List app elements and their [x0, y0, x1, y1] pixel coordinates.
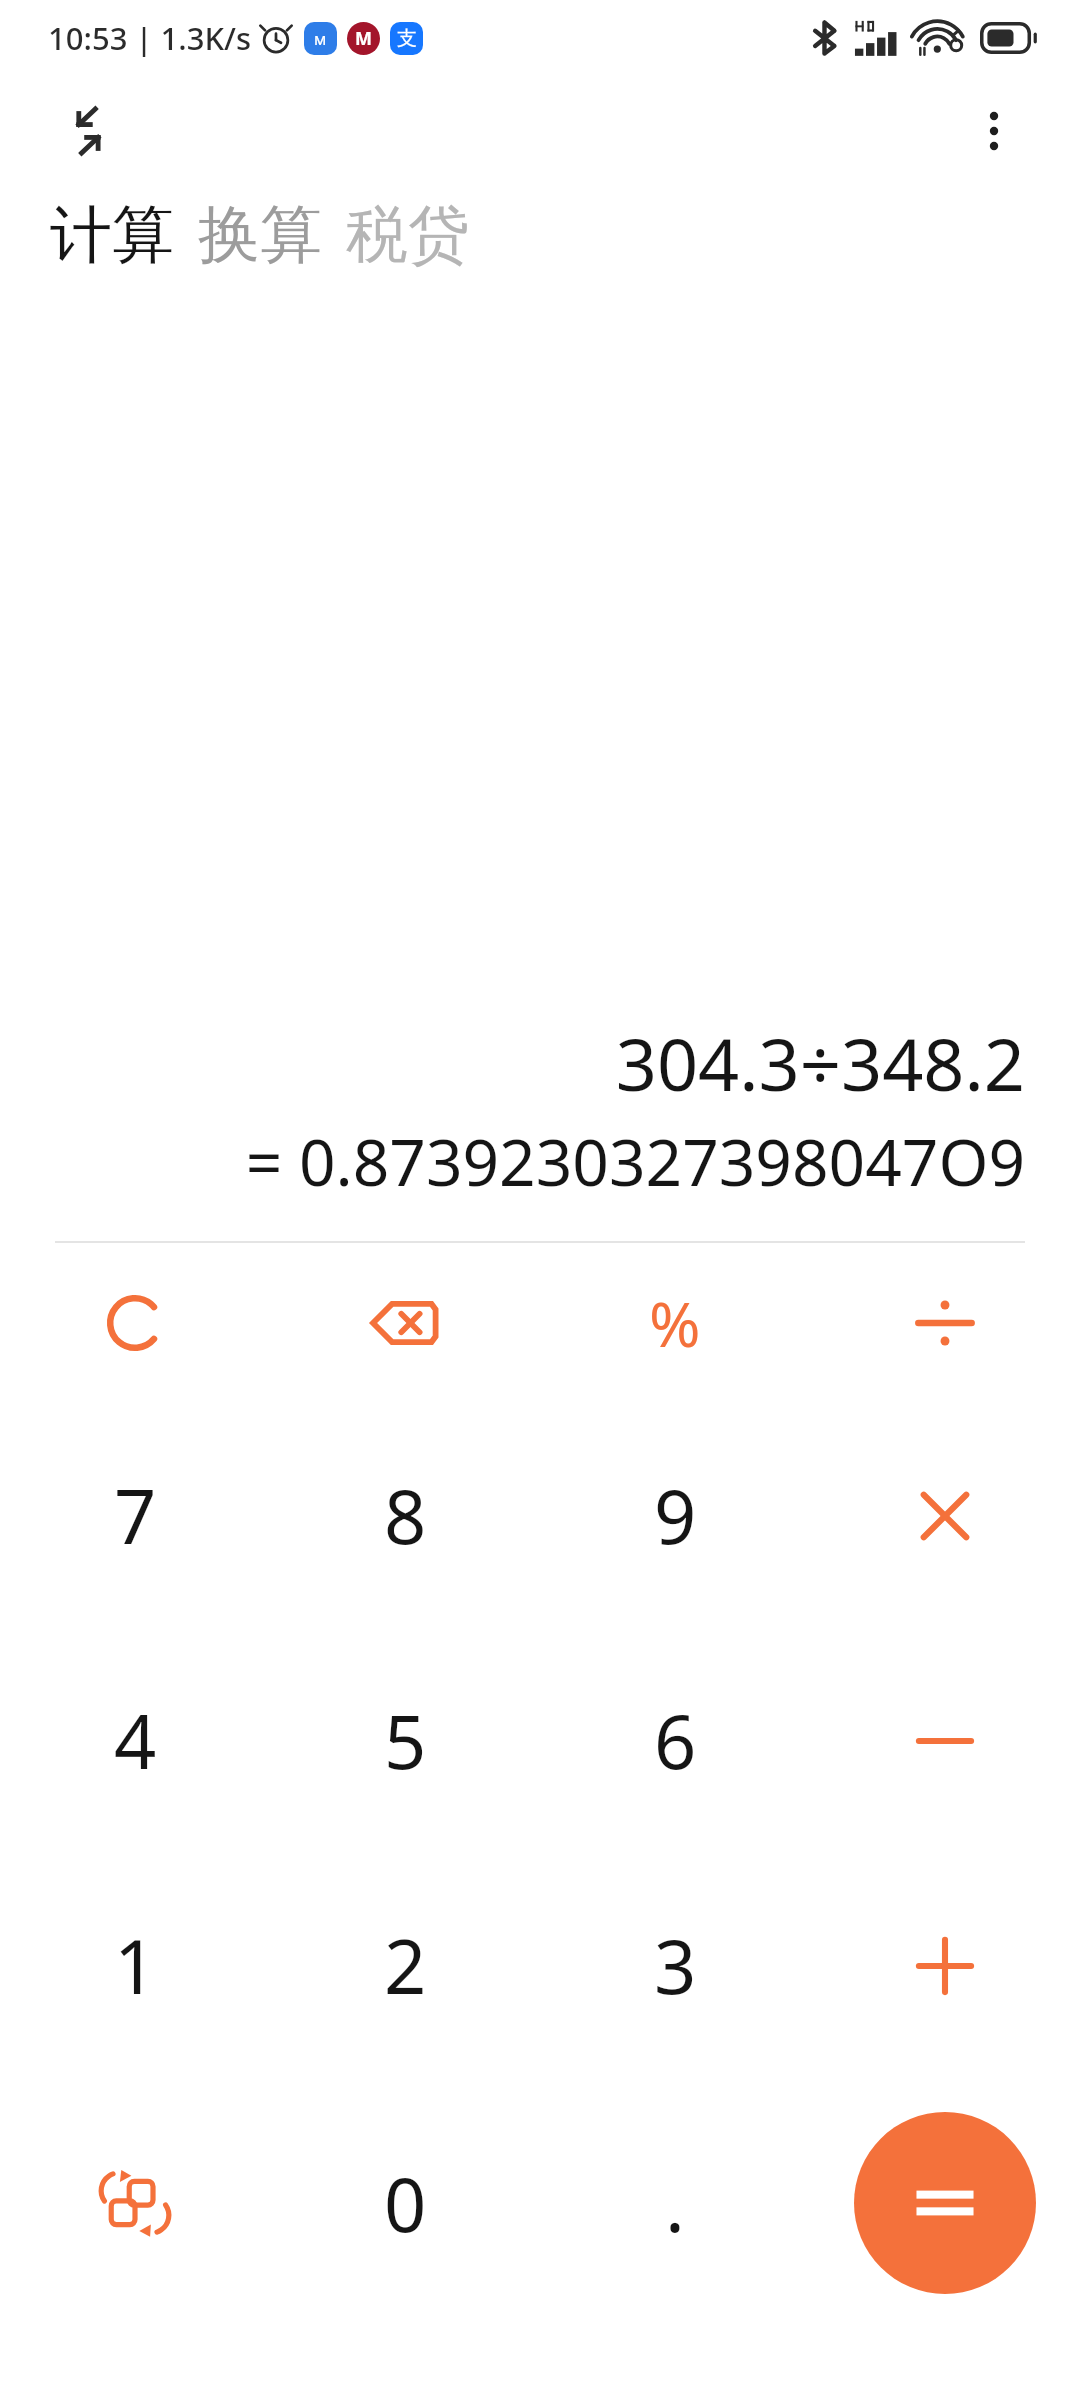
staticText: 税贷: [346, 196, 470, 274]
staticText: 换算: [198, 196, 322, 274]
staticText: 304.3÷348.2: [55, 1014, 1025, 1112]
staticText: %: [649, 1281, 701, 1365]
button[interactable]: [810, 1243, 1080, 1403]
button[interactable]: 4: [0, 1628, 270, 1853]
button[interactable]: %: [540, 1243, 810, 1403]
staticText: .: [665, 2153, 685, 2254]
button[interactable]: [810, 1853, 1080, 2078]
button[interactable]: 计算: [50, 196, 174, 274]
staticText: м: [314, 28, 327, 50]
button[interactable]: [810, 1628, 1080, 1853]
button[interactable]: [270, 1243, 540, 1403]
button[interactable]: 6: [540, 1628, 810, 1853]
button[interactable]: More options: [952, 89, 1036, 173]
button[interactable]: 7: [0, 1403, 270, 1628]
staticText: 5: [384, 1690, 427, 1791]
staticText: 8: [384, 1465, 427, 1566]
staticText: 0: [384, 2153, 427, 2254]
button[interactable]: [810, 1403, 1080, 1628]
staticText: 9: [654, 1465, 697, 1566]
button[interactable]: Collapse: [46, 89, 130, 173]
button[interactable]: 3: [540, 1853, 810, 2078]
staticText: 6: [654, 1690, 697, 1791]
button[interactable]: 1: [0, 1853, 270, 2078]
button[interactable]: 8: [270, 1403, 540, 1628]
button[interactable]: Equals: [854, 2112, 1036, 2294]
staticText: 2: [384, 1915, 427, 2016]
staticText: 10:53 | 1.3K/s: [48, 17, 252, 59]
button[interactable]: 换算: [198, 196, 322, 274]
button[interactable]: 9: [540, 1403, 810, 1628]
staticText: 1: [114, 1915, 157, 2016]
staticText: 7: [114, 1465, 157, 1566]
button[interactable]: .: [540, 2078, 810, 2328]
staticText: 计算: [50, 196, 174, 274]
staticText: 4: [114, 1690, 157, 1791]
staticText: M: [355, 26, 372, 51]
staticText: 3: [654, 1915, 697, 2016]
button[interactable]: 税贷: [346, 196, 470, 274]
button[interactable]: 2: [270, 1853, 540, 2078]
button[interactable]: 0: [270, 2078, 540, 2328]
button[interactable]: [0, 2078, 270, 2328]
staticText: 支: [397, 26, 417, 51]
staticText: = 0.8739230327398047O9: [55, 1118, 1025, 1205]
button[interactable]: [0, 1243, 270, 1403]
button[interactable]: 5: [270, 1628, 540, 1853]
